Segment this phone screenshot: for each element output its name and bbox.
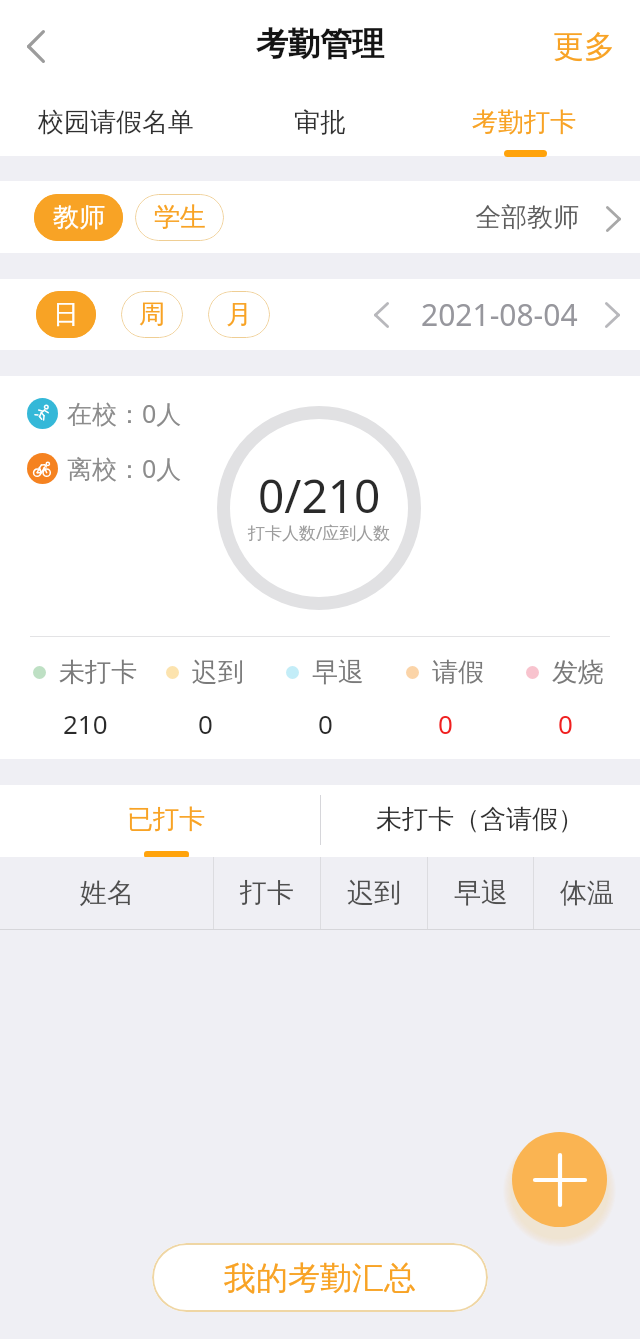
staticText: 离校：0人: [67, 451, 182, 485]
staticText: 0/210: [258, 464, 381, 527]
button[interactable]: 日: [36, 291, 96, 338]
staticText: 在校：0人: [67, 396, 182, 430]
button[interactable]: 学生: [135, 194, 224, 241]
staticText: 0: [318, 706, 333, 741]
staticText: 210: [63, 706, 108, 741]
staticText: 月: [226, 298, 252, 331]
button[interactable]: 全部教师: [461, 181, 640, 253]
staticText: 姓名: [80, 876, 134, 910]
button[interactable]: 未打卡（含请假）: [320, 785, 640, 857]
staticText: 我的考勤汇总: [224, 1258, 416, 1298]
button[interactable]: 月: [208, 291, 270, 338]
staticText: 打卡人数/应到人数: [248, 521, 391, 544]
button[interactable]: 周: [121, 291, 183, 338]
staticText: 2021-08-04: [421, 294, 578, 335]
staticText: 0: [438, 706, 453, 741]
staticText: 早退: [312, 656, 364, 689]
staticText: 周: [139, 298, 165, 331]
button[interactable]: Add: [512, 1132, 607, 1227]
button[interactable]: 更多: [533, 11, 640, 78]
staticText: 迟到: [192, 656, 244, 689]
button[interactable]: 考勤打卡: [422, 88, 626, 156]
staticText: 考勤打卡: [472, 106, 576, 139]
staticText: 更多: [553, 27, 615, 66]
staticText: 日: [53, 298, 79, 331]
staticText: 迟到: [347, 876, 401, 910]
staticText: 考勤管理: [256, 24, 384, 64]
button[interactable]: Next day: [594, 279, 630, 350]
staticText: 教师: [53, 201, 105, 234]
button[interactable]: 教师: [34, 194, 123, 241]
button[interactable]: Back: [0, 11, 66, 77]
staticText: 0: [558, 706, 573, 741]
staticText: 体温: [560, 876, 614, 910]
staticText: 未打卡: [59, 656, 137, 689]
staticText: 全部教师: [475, 201, 579, 234]
staticText: 已打卡: [127, 803, 205, 836]
staticText: 打卡: [240, 876, 294, 910]
staticText: 请假: [432, 656, 484, 689]
staticText: 早退: [454, 876, 508, 910]
button[interactable]: 我的考勤汇总: [152, 1243, 488, 1312]
button[interactable]: 已打卡: [0, 785, 319, 857]
button[interactable]: Previous day: [363, 279, 399, 350]
staticText: 未打卡（含请假）: [376, 803, 584, 836]
staticText: 学生: [154, 201, 206, 234]
button[interactable]: 审批: [218, 88, 422, 156]
staticText: 校园请假名单: [38, 106, 194, 139]
staticText: 0: [198, 706, 213, 741]
staticText: 发烧: [552, 656, 604, 689]
staticText: 审批: [294, 106, 346, 139]
button[interactable]: 校园请假名单: [14, 88, 218, 156]
